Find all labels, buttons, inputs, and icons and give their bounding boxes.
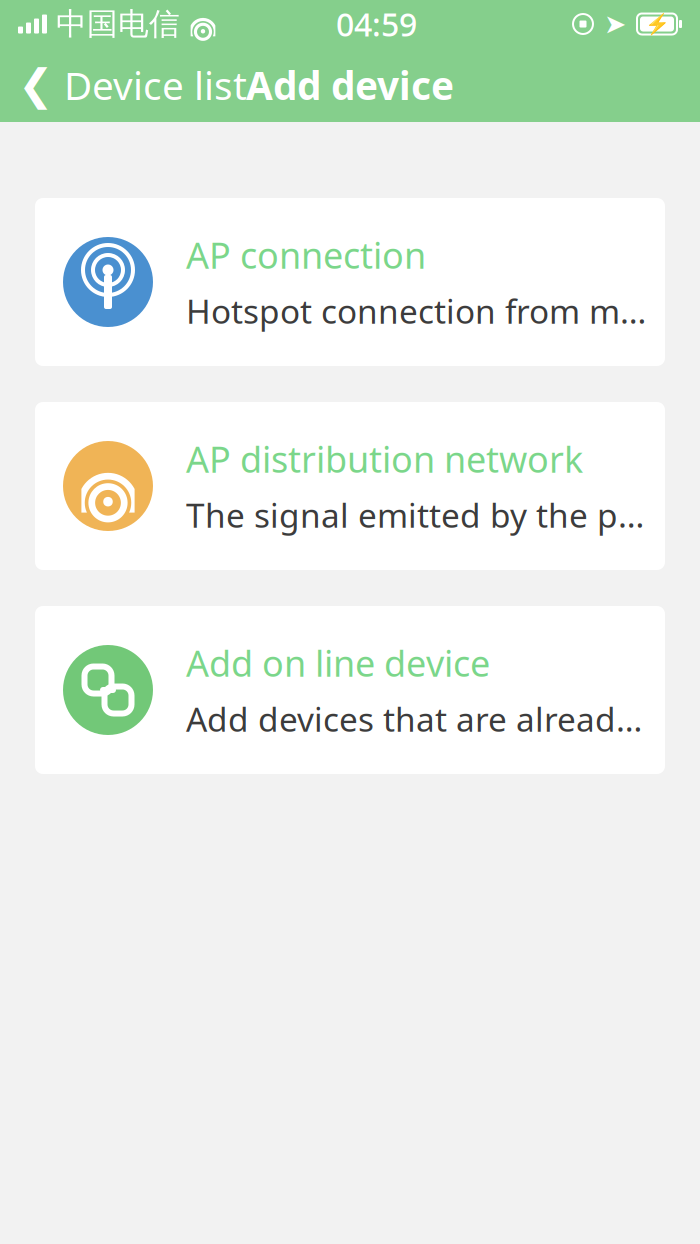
staticText: Add devices that are already networked [186,697,649,741]
button[interactable]: AP connection [35,198,665,366]
staticText: Add device [246,59,454,111]
staticText: The signal emitted by the phone and devi… [186,493,649,537]
button[interactable]: Add on line device [35,606,665,774]
staticText: 04:59 [336,3,417,45]
button[interactable]: ❮ [0,47,257,123]
staticText: Device list [64,59,247,111]
staticText: 中国电信 [56,5,180,43]
staticText: ➤ [604,9,626,39]
staticText: Add on line device [186,639,490,687]
staticText: Hotspot connection from mobile phon… [186,289,649,333]
staticText: AP connection [186,231,426,279]
staticText: ⚡ [644,13,669,35]
button[interactable]: AP distribution network [35,402,665,570]
staticText: ❮ [18,61,54,109]
staticText: AP distribution network [186,435,583,483]
